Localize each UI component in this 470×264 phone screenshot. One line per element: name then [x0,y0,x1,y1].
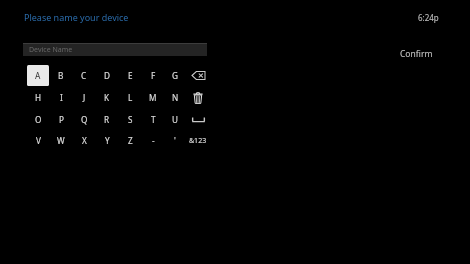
staticText: R [104,114,110,125]
staticText: F [151,70,156,81]
button[interactable]: H [27,87,49,108]
staticText: Q [81,114,88,125]
button[interactable]: K [96,87,118,108]
button[interactable]: A [27,65,49,86]
staticText: Confirm [400,48,433,60]
staticText: H [35,92,42,103]
staticText: J [83,92,86,103]
staticText: B [58,70,64,81]
staticText: I [60,92,63,103]
staticText: Please name your device [24,11,129,23]
staticText: T [151,114,156,125]
staticText: N [172,92,179,103]
button[interactable]: O [27,109,49,130]
button[interactable]: Device Name [23,43,207,56]
staticText: S [128,114,133,125]
button[interactable]: F [142,65,164,86]
button[interactable]: C [73,65,95,86]
button[interactable]: V [27,130,49,151]
staticText: M [149,92,157,103]
button[interactable]: X [73,130,95,151]
staticText: D [104,70,110,81]
staticText: O [35,114,42,125]
button[interactable]: Z [119,130,141,151]
button[interactable]: R [96,109,118,130]
button[interactable]: Clear all [187,87,209,108]
button[interactable]: Confirm [400,45,450,63]
button[interactable]: E [119,65,141,86]
staticText: X [82,135,87,146]
button[interactable]: - [142,130,164,151]
button[interactable]: Backspace [187,65,209,86]
staticText: Y [105,135,110,146]
staticText: U [172,114,178,125]
button[interactable]: U [164,109,186,130]
staticText: W [57,135,65,146]
button[interactable]: &123 [187,130,209,151]
button[interactable]: Y [96,130,118,151]
staticText: E [128,70,133,81]
staticText: Device Name [29,45,73,55]
button[interactable]: Q [73,109,95,130]
staticText: &123 [189,136,207,146]
button[interactable]: I [50,87,72,108]
button[interactable]: M [142,87,164,108]
button[interactable]: S [119,109,141,130]
staticText: G [172,70,178,81]
button[interactable]: G [164,65,186,86]
staticText: C [81,70,87,81]
staticText: 6:24p [418,12,439,23]
button[interactable]: P [50,109,72,130]
staticText: K [104,92,110,103]
button[interactable]: Space [187,109,209,130]
button[interactable]: B [50,65,72,86]
staticText: Z [128,135,133,146]
staticText: - [152,135,155,146]
button[interactable]: N [164,87,186,108]
staticText: L [128,92,133,103]
button[interactable]: W [50,130,72,151]
button[interactable]: T [142,109,164,130]
staticText: P [59,114,64,125]
button[interactable]: L [119,87,141,108]
staticText: ' [174,135,176,146]
staticText: V [36,135,41,146]
staticText: A [35,70,41,81]
button[interactable]: ' [164,130,186,151]
button[interactable]: D [96,65,118,86]
button[interactable]: J [73,87,95,108]
